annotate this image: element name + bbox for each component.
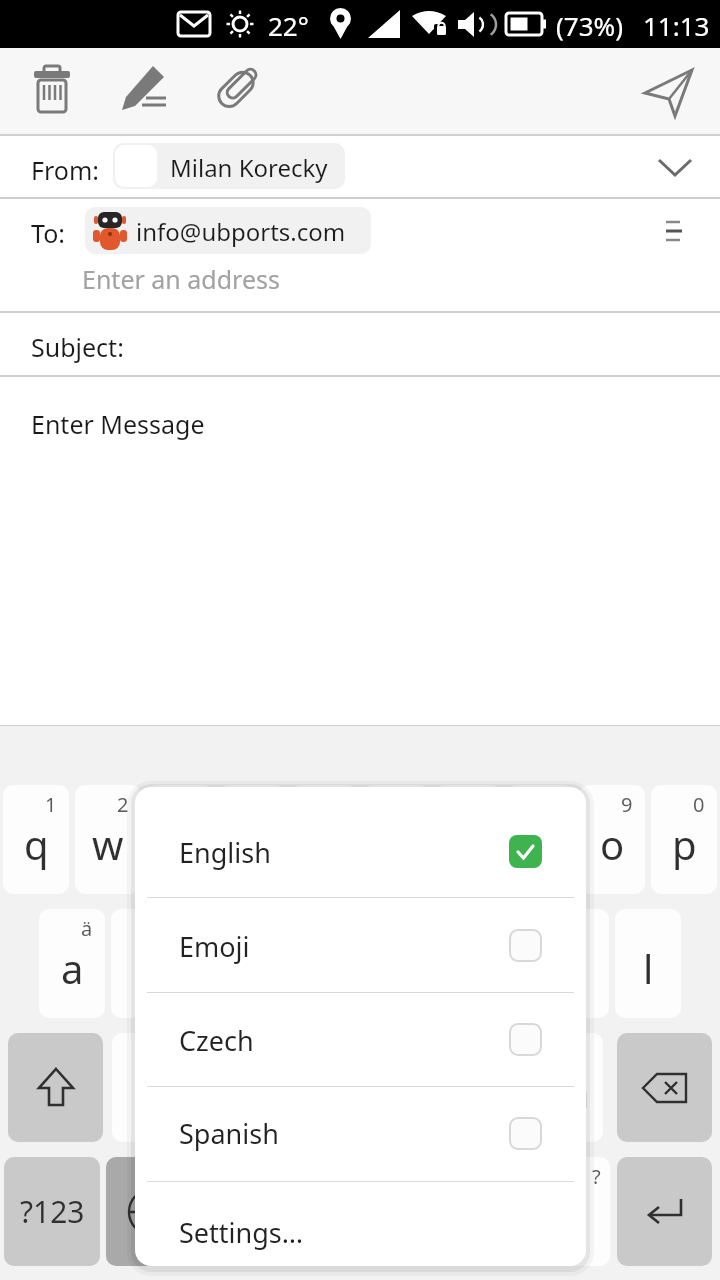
button[interactable] (24, 58, 80, 118)
button[interactable]: f (255, 909, 321, 1018)
staticText: f (281, 941, 295, 995)
staticText: Enter an address (82, 262, 280, 296)
button[interactable]: v (325, 1033, 390, 1142)
staticText: m (552, 1065, 590, 1119)
button[interactable]: info@ubports.com (85, 207, 371, 254)
button[interactable]: q (3, 785, 69, 894)
button[interactable]: r (219, 785, 285, 894)
staticText: ?123 (20, 1191, 85, 1232)
staticText: Czech (179, 1022, 254, 1059)
staticText: i (535, 817, 546, 871)
button[interactable]: d (183, 909, 249, 1018)
button[interactable]: c (254, 1033, 319, 1142)
staticText: Spanish (179, 1115, 279, 1152)
staticText: v (347, 1065, 368, 1119)
button[interactable]: w (75, 785, 141, 894)
staticText: z (135, 1065, 154, 1119)
button[interactable] (118, 58, 174, 118)
button[interactable]: t (291, 785, 357, 894)
button[interactable] (135, 897, 586, 992)
button[interactable] (617, 1033, 712, 1142)
button[interactable]: j (471, 909, 537, 1018)
button[interactable]: Milan Korecky (113, 143, 345, 189)
staticText: To: (31, 216, 65, 250)
button[interactable]: h (399, 909, 465, 1018)
staticText: info@ubports.com (136, 215, 346, 248)
staticText: Milan Korecky (170, 151, 328, 184)
button[interactable] (208, 58, 264, 118)
button[interactable] (106, 1157, 198, 1266)
button[interactable]: i (507, 785, 573, 894)
staticText: Enter Message (31, 407, 205, 441)
staticText: b (416, 1065, 441, 1119)
button[interactable]: z (112, 1033, 177, 1142)
button[interactable]: u (435, 785, 501, 894)
button[interactable]: ?123 (4, 1157, 100, 1266)
button[interactable] (205, 1157, 520, 1266)
staticText: 11:13 (643, 8, 710, 43)
staticText: 22° (268, 8, 309, 43)
button[interactable]: n (467, 1033, 532, 1142)
button[interactable] (135, 1181, 586, 1266)
button[interactable]: k (543, 909, 609, 1018)
button[interactable]: b (396, 1033, 461, 1142)
button[interactable]: s (111, 909, 177, 1018)
staticText: From: (31, 153, 100, 187)
staticText: Emoji (179, 928, 250, 965)
button[interactable]: x (183, 1033, 248, 1142)
staticText: n (487, 1065, 512, 1119)
staticText: x (205, 1065, 227, 1119)
button[interactable] (135, 1086, 586, 1181)
button[interactable] (617, 1157, 712, 1266)
staticText: h (420, 941, 445, 995)
staticText: k (565, 941, 587, 995)
button[interactable]: m (538, 1033, 603, 1142)
staticText: g (348, 941, 373, 995)
staticText: s (134, 941, 154, 995)
staticText: 2 (117, 791, 129, 818)
staticText: e (169, 817, 192, 871)
button[interactable]: . (527, 1157, 610, 1266)
button[interactable] (632, 58, 702, 122)
staticText: o (600, 817, 625, 871)
staticText: English (179, 834, 271, 871)
button[interactable] (135, 992, 586, 1086)
button[interactable]: l (615, 909, 681, 1018)
staticText: j (499, 941, 510, 995)
staticText: ? (592, 1163, 601, 1190)
staticText: Subject: (31, 330, 124, 364)
button[interactable]: o (579, 785, 645, 894)
button[interactable]: y (363, 785, 429, 894)
staticText: c (277, 1065, 297, 1119)
button[interactable] (8, 1033, 103, 1142)
staticText: r (244, 817, 261, 871)
button[interactable]: e (147, 785, 213, 894)
staticText: 1 (45, 791, 57, 818)
staticText: ä (81, 915, 93, 942)
staticText: l (643, 941, 654, 995)
staticText: p (672, 817, 697, 871)
staticText: Settings… (179, 1214, 304, 1251)
staticText: (73%) (556, 8, 623, 43)
staticText: q (24, 817, 49, 871)
button[interactable]: p (651, 785, 717, 894)
staticText: a (61, 941, 84, 995)
staticText: 9 (621, 791, 633, 818)
staticText: d (204, 941, 229, 995)
button[interactable] (135, 787, 586, 897)
staticText: 0 (693, 791, 705, 818)
button[interactable]: a (39, 909, 105, 1018)
staticText: w (92, 817, 124, 871)
button[interactable]: g (327, 909, 393, 1018)
